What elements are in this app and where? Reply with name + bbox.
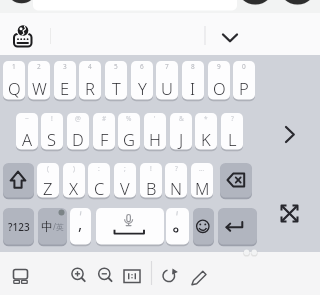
staticText: D	[72, 128, 84, 150]
staticText: V	[120, 177, 130, 199]
staticText: L	[228, 128, 237, 150]
staticText: !	[51, 114, 53, 123]
button[interactable]: !	[140, 163, 162, 198]
staticText: K	[201, 128, 211, 150]
button[interactable]: ?123	[3, 208, 34, 245]
button[interactable]	[218, 208, 257, 245]
staticText: ,	[78, 213, 83, 235]
staticText: :	[98, 164, 100, 173]
button[interactable]: #	[93, 113, 115, 150]
staticText: I	[190, 77, 196, 99]
staticText: 4	[88, 62, 92, 71]
staticText: H	[149, 128, 161, 150]
staticText: B	[146, 177, 157, 199]
button[interactable]: ,	[70, 208, 91, 245]
button[interactable]	[278, 118, 304, 144]
button[interactable]: 5	[105, 61, 127, 100]
button[interactable]: !	[41, 113, 63, 150]
button[interactable]	[94, 262, 116, 286]
staticText: ~	[25, 114, 29, 123]
button[interactable]	[8, 20, 40, 52]
staticText: !	[150, 164, 152, 173]
staticText: ?	[231, 114, 234, 123]
staticText: @	[75, 114, 81, 123]
button[interactable]: 4	[79, 61, 101, 100]
button[interactable]: 2	[28, 61, 50, 100]
staticText: 7	[165, 62, 169, 71]
staticText: W	[32, 77, 47, 99]
staticText: …	[199, 164, 205, 173]
staticText: ?	[175, 164, 178, 173]
button[interactable]: ;	[114, 163, 136, 198]
staticText: O	[213, 77, 226, 99]
button[interactable]: …	[191, 163, 213, 198]
button[interactable]	[96, 208, 164, 245]
button[interactable]	[188, 262, 212, 286]
staticText: S	[47, 128, 57, 150]
button[interactable]: 6	[131, 61, 153, 100]
button[interactable]: 3	[54, 61, 76, 100]
staticText: Q	[8, 77, 21, 99]
staticText: E	[60, 77, 70, 99]
staticText: X	[69, 177, 79, 199]
staticText: '	[154, 114, 156, 123]
staticText: (	[47, 164, 49, 173]
staticText: 9	[217, 62, 221, 71]
staticText: C	[94, 177, 105, 199]
button[interactable]: (	[37, 163, 59, 198]
staticText: Z	[43, 177, 53, 199]
staticText: 8	[191, 62, 195, 71]
button[interactable]	[277, 201, 303, 227]
staticText: A	[22, 128, 33, 150]
button[interactable]: '	[144, 113, 166, 150]
button[interactable]: *	[195, 113, 217, 150]
staticText: 1	[12, 62, 16, 71]
button[interactable]: ?	[221, 113, 243, 150]
button[interactable]: &	[170, 113, 192, 150]
staticText: 2	[37, 62, 41, 71]
button[interactable]: ?	[165, 163, 187, 198]
staticText: M	[195, 177, 210, 199]
staticText: &	[179, 114, 184, 123]
staticText: T	[112, 77, 121, 99]
staticText: ;	[124, 164, 126, 173]
staticText: R	[85, 77, 95, 99]
button[interactable]	[214, 22, 246, 50]
button[interactable]	[8, 262, 32, 286]
button[interactable]: ~	[16, 113, 38, 150]
staticText: P	[239, 77, 249, 99]
staticText: *	[204, 114, 208, 123]
staticText: 6	[140, 62, 144, 71]
staticText: 中	[41, 219, 53, 234]
button[interactable]: %	[118, 113, 140, 150]
button[interactable]: 9	[208, 61, 230, 100]
button[interactable]: 8	[182, 61, 204, 100]
staticText: 5	[114, 62, 118, 71]
button[interactable]	[158, 262, 182, 286]
button[interactable]	[220, 163, 252, 198]
staticText: ?123	[8, 220, 30, 234]
staticText: U	[161, 77, 173, 99]
staticText: G	[123, 128, 135, 150]
button[interactable]: 1	[3, 61, 25, 100]
staticText: N	[170, 177, 183, 199]
button[interactable]	[3, 163, 34, 198]
button[interactable]: 7	[156, 61, 178, 100]
button[interactable]	[120, 262, 144, 286]
button[interactable]	[166, 208, 189, 245]
staticText: J	[179, 128, 184, 150]
button[interactable]	[193, 208, 214, 245]
button[interactable]: )	[63, 163, 85, 198]
button[interactable]: 中	[38, 208, 67, 245]
staticText: 3	[63, 62, 67, 71]
button[interactable]: :	[88, 163, 110, 198]
button[interactable]	[68, 262, 90, 286]
staticText: )	[73, 164, 75, 173]
staticText: %	[126, 114, 132, 123]
button[interactable]: @	[67, 113, 89, 150]
staticText: /英	[53, 221, 64, 232]
button[interactable]: 0	[233, 61, 255, 100]
staticText: F	[100, 128, 109, 150]
staticText: Y	[138, 77, 147, 99]
staticText: 0	[242, 62, 246, 71]
